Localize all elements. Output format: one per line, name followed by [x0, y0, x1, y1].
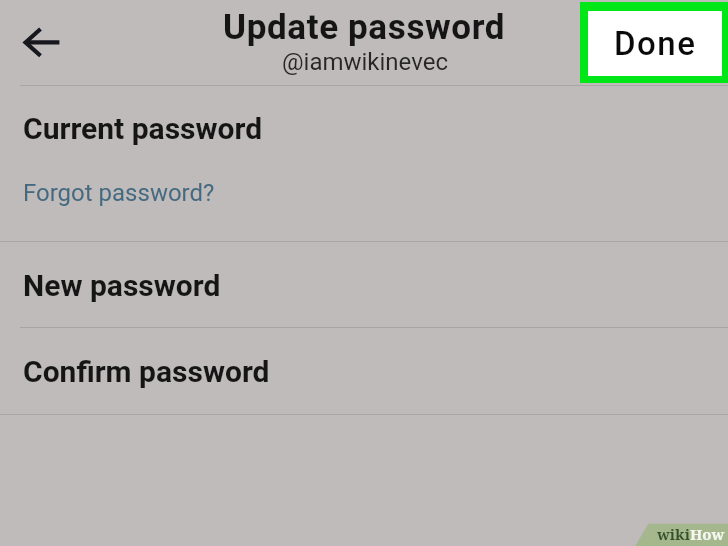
staticText: @iamwikinevec	[282, 48, 448, 76]
staticText: Current password	[23, 111, 263, 146]
button[interactable]: Confirm password	[0, 328, 728, 414]
staticText: New password	[23, 268, 221, 303]
staticText: How	[690, 524, 725, 544]
button[interactable]: Forgot password?	[15, 172, 223, 214]
button[interactable]: Current password	[0, 86, 728, 241]
button[interactable]: New password	[0, 242, 728, 327]
staticText: Forgot password?	[23, 179, 215, 207]
button[interactable]: Back	[2, 14, 60, 72]
button[interactable]: Done	[580, 2, 728, 83]
staticText: Confirm password	[23, 354, 270, 389]
staticText: Done	[614, 24, 697, 63]
staticText: wiki	[657, 524, 690, 544]
staticText: Update password	[223, 7, 506, 48]
